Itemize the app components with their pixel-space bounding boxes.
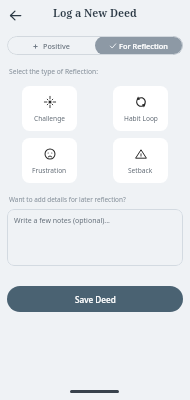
- staticText: Log a New Deed: [0, 6, 190, 20]
- staticText: Setback: [128, 166, 153, 175]
- staticText: Habit Loop: [124, 114, 158, 123]
- button[interactable]: Setback: [113, 138, 168, 183]
- staticText: Select the type of Reflection:: [9, 67, 98, 76]
- staticText: Write a few notes (optional)...: [14, 216, 110, 226]
- staticText: For Reflection: [119, 41, 168, 51]
- staticText: Save Deed: [75, 294, 116, 305]
- button[interactable]: Back: [5, 5, 25, 25]
- staticText: Want to add details for later reflection…: [9, 195, 126, 204]
- staticText: Challenge: [34, 114, 65, 123]
- button[interactable]: Habit Loop: [113, 86, 168, 131]
- staticText: Positive: [43, 41, 70, 51]
- button[interactable]: Challenge: [22, 86, 77, 131]
- button[interactable]: Write a few notes (optional)...: [7, 209, 183, 266]
- button[interactable]: Frustration: [22, 138, 77, 183]
- button[interactable]: Positive: [7, 36, 95, 55]
- staticText: Frustration: [32, 166, 67, 175]
- button[interactable]: For Reflection: [95, 36, 183, 55]
- button[interactable]: Save Deed: [7, 286, 183, 312]
